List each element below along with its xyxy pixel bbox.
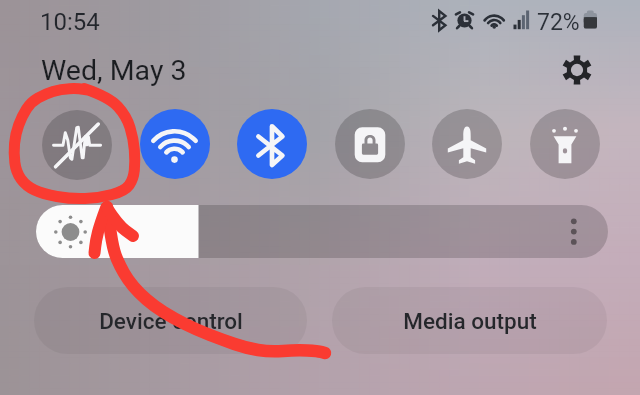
button[interactable]: Flashlight (530, 109, 600, 179)
button[interactable]: Device control (34, 287, 307, 354)
staticText: 10:54 (40, 8, 100, 36)
staticText: 72% (537, 9, 580, 36)
button[interactable]: Media output (332, 287, 607, 354)
button[interactable]: Sound and vibration off (42, 110, 112, 180)
button[interactable]: Wi-Fi (140, 109, 210, 179)
staticText: Device control (99, 308, 243, 334)
button[interactable]: Bluetooth (237, 109, 307, 179)
button[interactable]: Settings (562, 55, 592, 85)
staticText: Wed, May 3 (41, 54, 187, 87)
button[interactable]: Auto rotate lock (335, 109, 405, 179)
button[interactable]: Brightness (36, 205, 608, 258)
staticText: Media output (403, 308, 537, 334)
button[interactable]: Airplane mode (432, 109, 502, 179)
